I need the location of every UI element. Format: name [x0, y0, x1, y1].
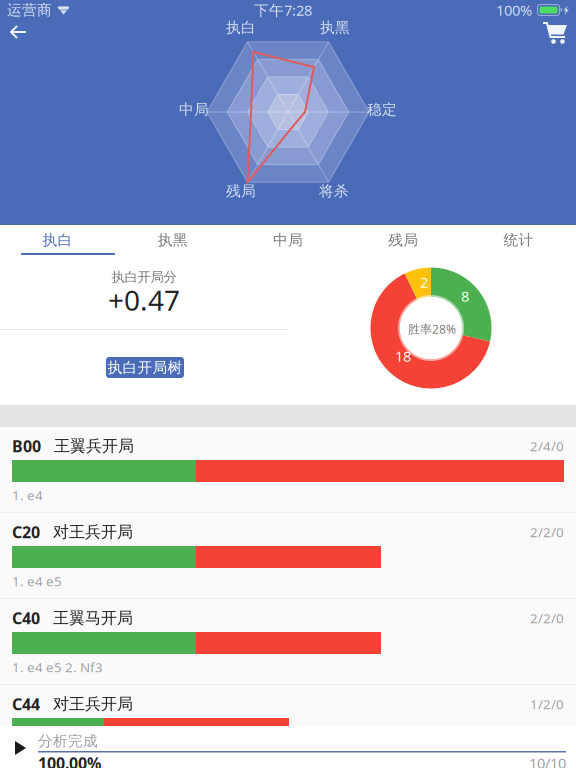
- button[interactable]: C40: [0, 599, 576, 685]
- staticText: 中局: [179, 100, 209, 118]
- staticText: 1/2/0: [530, 695, 564, 713]
- staticText: 100.00%: [38, 752, 101, 768]
- button[interactable]: Shopping cart: [536, 14, 576, 50]
- staticText: 18: [395, 346, 411, 366]
- button[interactable]: C44: [0, 685, 576, 768]
- staticText: C40: [12, 607, 40, 629]
- button[interactable]: C20: [0, 513, 576, 599]
- staticText: 2/2/0: [530, 609, 564, 627]
- staticText: 执白: [43, 231, 73, 249]
- staticText: 8: [461, 286, 469, 306]
- staticText: 1. e4 e5 2. Nf3: [12, 658, 103, 676]
- staticText: 胜率28%: [408, 321, 456, 337]
- staticText: C20: [12, 521, 40, 543]
- staticText: 执黑: [158, 231, 188, 249]
- staticText: 下午7:28: [254, 0, 312, 20]
- staticText: 执白: [226, 19, 256, 37]
- staticText: 执黑: [320, 19, 350, 37]
- staticText: 将杀: [319, 182, 349, 200]
- button[interactable]: 执白开局树: [106, 357, 184, 378]
- button[interactable]: B00: [0, 427, 576, 513]
- button[interactable]: 执黑: [115, 225, 230, 255]
- staticText: 中局: [273, 231, 303, 249]
- staticText: 1. e4 e5: [12, 572, 62, 590]
- staticText: 10/10: [529, 753, 566, 768]
- staticText: 100%: [496, 0, 532, 20]
- staticText: B00: [12, 435, 41, 457]
- staticText: 王翼马开局: [53, 608, 133, 628]
- button[interactable]: 残局: [346, 225, 461, 255]
- staticText: 统计: [503, 231, 533, 249]
- staticText: 分析完成: [38, 732, 98, 750]
- staticText: 2: [420, 272, 428, 292]
- staticText: 王翼兵开局: [54, 436, 134, 456]
- button[interactable]: 统计: [461, 225, 576, 255]
- staticText: C44: [12, 693, 40, 715]
- staticText: 稳定: [367, 101, 397, 119]
- staticText: 运营商: [7, 1, 52, 19]
- button[interactable]: 执白: [0, 225, 115, 255]
- button[interactable]: Play: [0, 726, 38, 768]
- staticText: 1. e4: [12, 486, 43, 504]
- staticText: 2/4/0: [530, 437, 564, 455]
- button[interactable]: Back: [0, 14, 40, 50]
- staticText: 执白开局树: [107, 358, 182, 376]
- staticText: +0.47: [108, 281, 180, 319]
- button[interactable]: 中局: [230, 225, 346, 255]
- staticText: 残局: [388, 231, 418, 249]
- staticText: 残局: [226, 182, 256, 200]
- staticText: 对王兵开局: [53, 694, 133, 714]
- staticText: 对王兵开局: [53, 522, 133, 542]
- staticText: 执白开局分: [111, 269, 176, 285]
- staticText: 2/2/0: [530, 523, 564, 541]
